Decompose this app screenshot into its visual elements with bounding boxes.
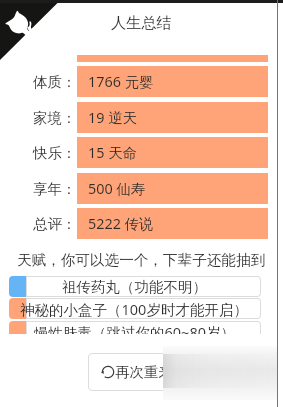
staticText: 享年： [33,180,77,198]
staticText: 500 仙寿 [88,179,146,199]
staticText: 慢性肤毒（跳过你的60~80岁） [34,322,235,334]
button[interactable]: GitHub [0,0,60,60]
button[interactable]: 总评： [13,208,268,239]
button[interactable]: 再次重来 [88,353,185,391]
staticText: 再次重来 [115,363,173,381]
button[interactable]: 慢性肤毒（跳过你的60~80岁） [9,321,261,334]
button[interactable]: 家境： [13,102,268,133]
staticText: 祖传药丸（功能不明） [62,278,207,296]
staticText: 天赋，你可以选一个，下辈子还能抽到 [17,251,266,269]
button[interactable]: 祖传药丸（功能不明） [9,276,261,297]
staticText: 家境： [33,109,77,127]
button[interactable]: 享年： [13,173,268,204]
button[interactable]: 体质： [13,66,268,97]
staticText: 总评： [33,215,77,233]
staticText: 19 逆天 [88,108,137,128]
staticText: 5222 传说 [88,214,154,234]
staticText: 人生总结 [111,13,172,32]
button[interactable]: 快乐： [13,137,268,168]
staticText: 快乐： [33,144,77,162]
staticText: 1766 元婴 [88,72,154,92]
staticText: 神秘的小盒子（100岁时才能开启） [20,299,248,319]
staticText: 体质： [33,73,77,91]
staticText: 15 天命 [88,143,137,163]
button[interactable]: 神秘的小盒子（100岁时才能开启） [9,298,261,319]
